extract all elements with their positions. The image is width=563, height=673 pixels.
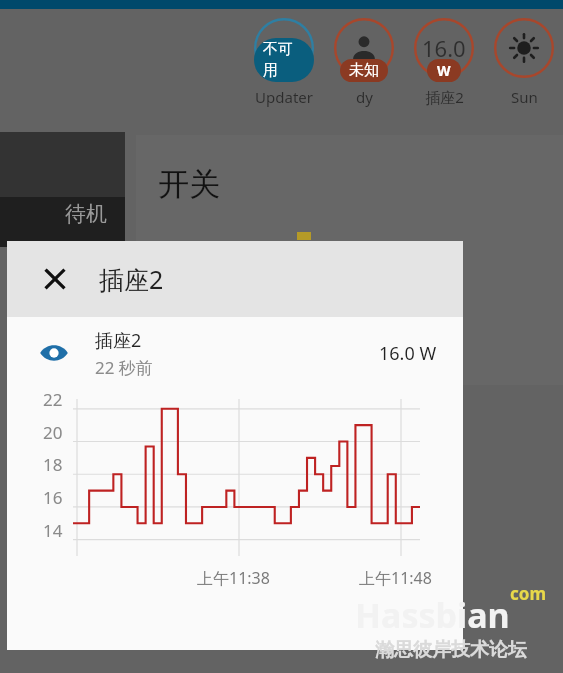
button[interactable]: 可见	[7, 317, 463, 389]
staticText: 16.0 W	[379, 341, 437, 366]
staticText: 22 秒前	[95, 356, 153, 379]
staticText: 16	[43, 486, 63, 509]
staticText: com	[510, 582, 546, 605]
staticText: 22	[43, 388, 63, 411]
other: 可见	[39, 338, 69, 368]
staticText: 待机	[65, 201, 107, 227]
button[interactable]: 不可用	[250, 18, 318, 107]
staticText: 开关	[158, 165, 220, 204]
button[interactable]: 关闭	[35, 259, 75, 299]
staticText: 18	[43, 453, 63, 476]
staticText: Hassbian	[355, 592, 510, 638]
staticText: 插座2	[425, 87, 464, 107]
staticText: 20	[43, 421, 63, 444]
staticText: 14	[43, 519, 63, 542]
staticText: Updater	[255, 87, 313, 107]
staticText: W	[437, 61, 451, 80]
staticText: Sun	[511, 87, 538, 107]
staticText: 插座2	[95, 328, 142, 353]
staticText: 上午11:38	[197, 567, 270, 589]
staticText: 上午11:48	[359, 567, 432, 589]
staticText: 未知	[349, 61, 379, 80]
button[interactable]: 未知	[330, 18, 398, 107]
staticText: 16.0	[422, 33, 466, 63]
button[interactable]: 待机	[0, 132, 125, 247]
button[interactable]: 16.0	[410, 18, 478, 107]
staticText: 不可用	[263, 40, 305, 80]
button[interactable]: 开关	[136, 135, 563, 385]
staticText: 瀚思彼岸技术论坛	[375, 638, 527, 662]
staticText: 插座2	[99, 262, 164, 296]
button[interactable]: Sun	[490, 18, 558, 107]
staticText: dy	[356, 87, 373, 107]
